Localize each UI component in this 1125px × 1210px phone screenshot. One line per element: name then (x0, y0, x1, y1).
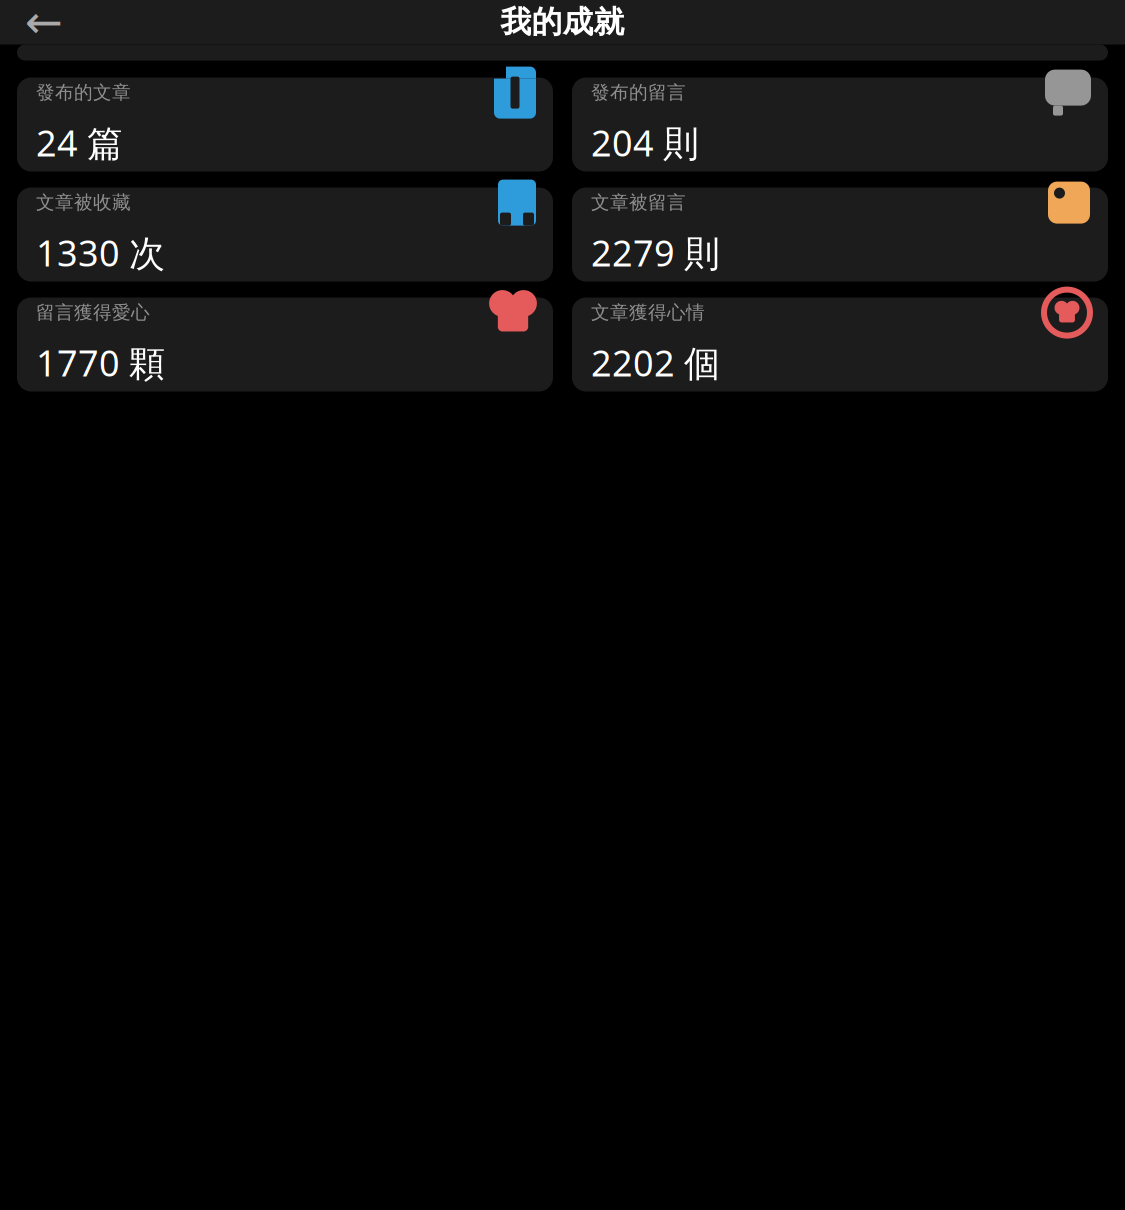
staticText: 發布的留言 (591, 81, 686, 104)
button[interactable]: 留言獲得愛心 (17, 297, 553, 391)
button[interactable]: 文章獲得心情 (572, 297, 1108, 391)
staticText: 我的成就 (500, 3, 624, 41)
staticText: 24 篇 (36, 119, 123, 166)
staticText: 204 則 (591, 119, 699, 166)
staticText: 1770 顆 (36, 339, 165, 386)
staticText: 文章獲得心情 (591, 301, 705, 324)
staticText: 2279 則 (591, 229, 720, 276)
button[interactable]: 發布的文章 (17, 77, 553, 171)
button[interactable]: 文章被收藏 (17, 187, 553, 281)
button[interactable]: 文章被留言 (572, 187, 1108, 281)
staticText: 文章被收藏 (36, 191, 131, 214)
button[interactable]: Back (14, 0, 74, 44)
staticText: ← (25, 0, 63, 48)
button[interactable]: 發布的留言 (572, 77, 1108, 171)
staticText: 2202 個 (591, 339, 720, 386)
staticText: 發布的文章 (36, 81, 131, 104)
staticText: 文章被留言 (591, 191, 686, 214)
staticText: 留言獲得愛心 (36, 301, 150, 324)
staticText: 1330 次 (36, 229, 165, 276)
